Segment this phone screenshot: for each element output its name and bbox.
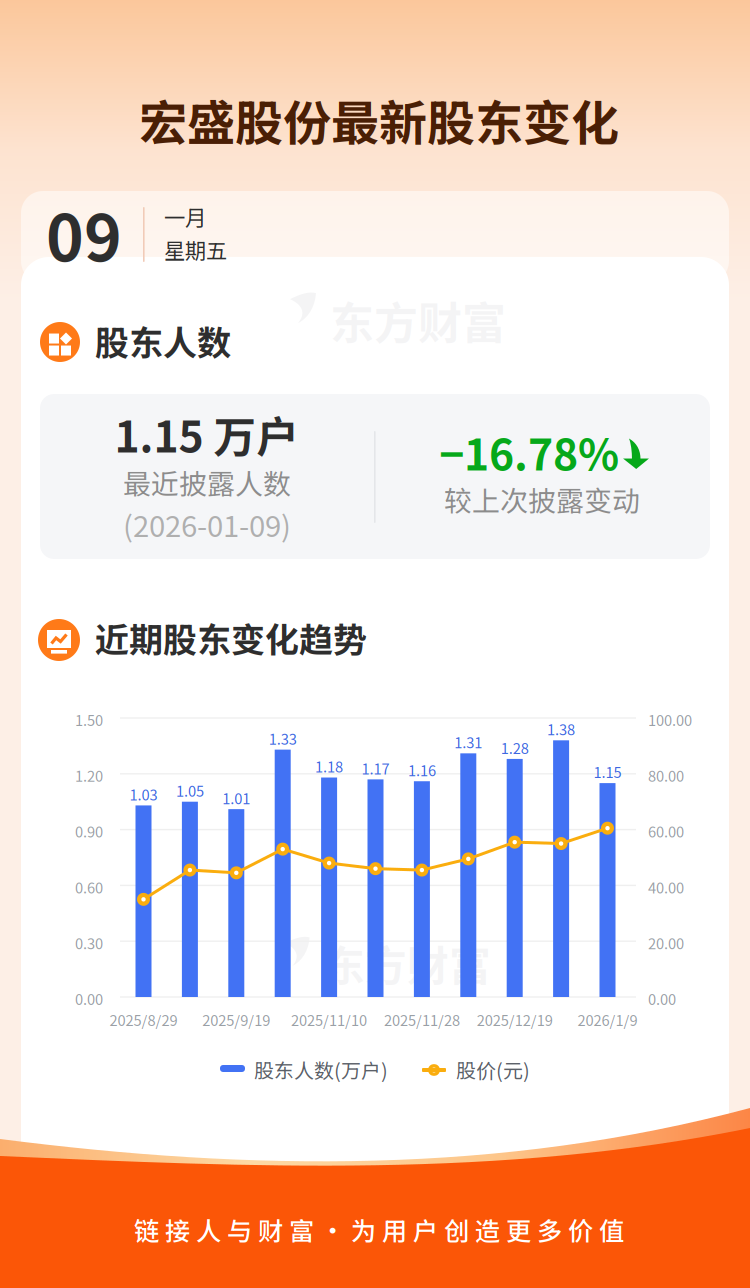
staticText: −16.78%: [439, 421, 619, 483]
staticText: 09: [46, 187, 122, 280]
staticText: 1.20: [75, 765, 103, 786]
staticText: 1.03: [129, 783, 157, 805]
staticText: 最近披露人数: [123, 462, 291, 502]
staticText: 1.28: [501, 737, 529, 758]
staticText: 2025/11/28: [384, 1009, 460, 1030]
staticText: 0.30: [75, 932, 103, 953]
staticText: 2025/8/29: [109, 1009, 177, 1030]
staticText: 1.18: [315, 755, 343, 777]
staticText: 2025/11/10: [291, 1009, 367, 1030]
staticText: 1.15 万户: [114, 403, 299, 465]
staticText: 1.31: [454, 731, 482, 752]
staticText: 星期五: [164, 234, 227, 265]
staticText: 0.90: [75, 821, 103, 842]
staticText: 20.00: [648, 932, 684, 953]
staticText: 1.05: [176, 780, 204, 801]
staticText: 较上次披露变动: [444, 479, 640, 519]
staticText: 链 接 人 与 财 富 · 为 用 户 创 造 更 多 价 值: [134, 1211, 624, 1248]
staticText: 80.00: [648, 765, 684, 786]
staticText: 1.38: [547, 718, 575, 739]
staticText: 一月: [164, 201, 206, 232]
staticText: 0.00: [75, 988, 103, 1009]
staticText: 2026/1/9: [577, 1009, 637, 1030]
staticText: 股价(元): [456, 1055, 530, 1084]
staticText: 0.60: [75, 876, 103, 898]
staticText: 东方财富: [330, 288, 506, 352]
staticText: 1.15: [593, 761, 621, 782]
staticText: (2026-01-09): [123, 503, 291, 545]
staticText: 宏盛股份最新股东变化: [139, 85, 619, 154]
staticText: 股东人数(万户): [254, 1055, 388, 1084]
staticText: 股东人数: [95, 316, 231, 365]
staticText: 2025/9/19: [202, 1009, 270, 1030]
staticText: 2025/12/19: [477, 1009, 553, 1030]
staticText: 1.17: [361, 757, 389, 779]
staticText: 1.50: [75, 709, 103, 730]
staticText: 1.16: [408, 759, 436, 780]
staticText: 60.00: [648, 821, 684, 842]
staticText: 0.00: [648, 988, 676, 1009]
staticText: 1.33: [269, 728, 297, 749]
staticText: 100.00: [648, 709, 692, 730]
staticText: 东方财富: [323, 933, 491, 993]
staticText: 40.00: [648, 876, 684, 898]
staticText: 近期股东变化趋势: [95, 613, 367, 662]
staticText: 1.01: [222, 787, 250, 808]
